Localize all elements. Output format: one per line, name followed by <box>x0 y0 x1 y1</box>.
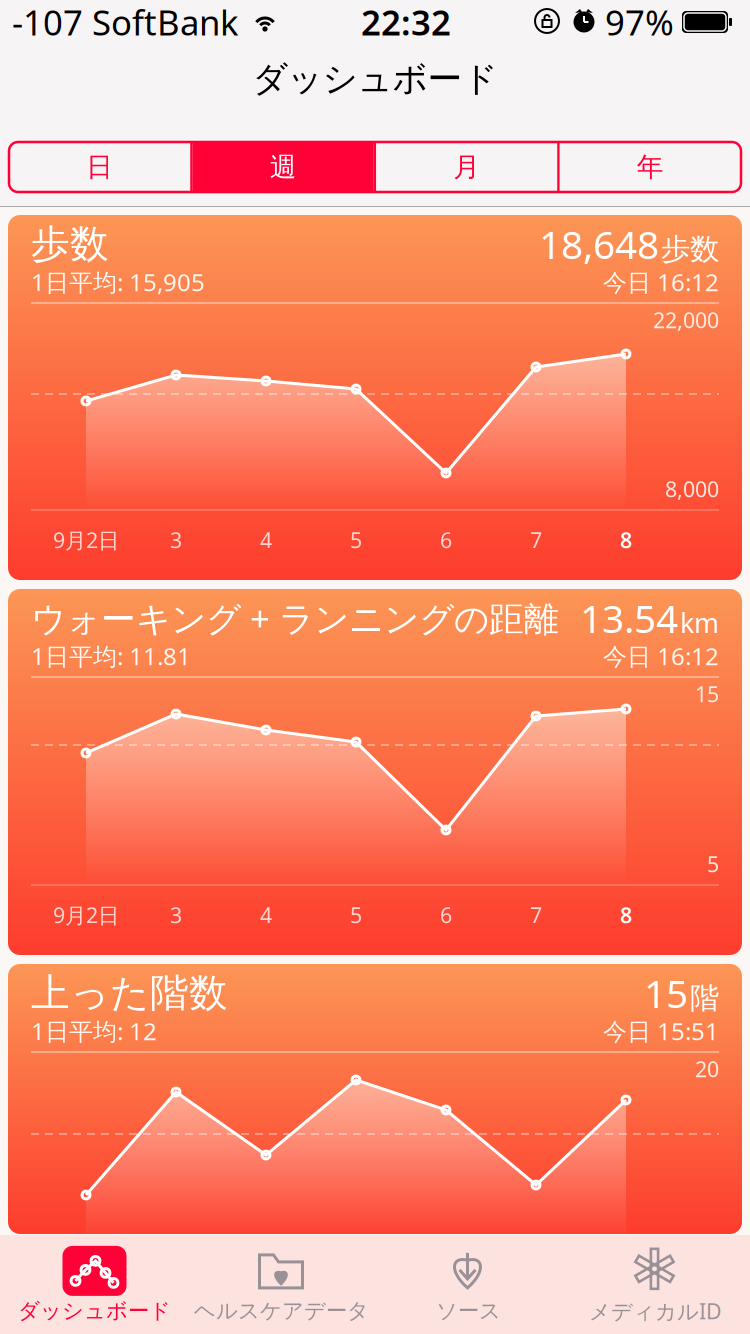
staticText: 15 <box>695 680 719 708</box>
staticText: 4 <box>260 901 272 929</box>
staticText: 5 <box>707 850 719 878</box>
staticText: 1日平均: 12 <box>31 1015 157 1047</box>
staticText: 8 <box>620 526 632 554</box>
staticText: 上った階数 <box>31 969 228 1017</box>
staticText: 5 <box>350 526 362 554</box>
staticText: 今日 15:51 <box>603 1015 719 1047</box>
staticText: 月 <box>453 151 480 183</box>
staticText: 15 <box>644 967 688 1019</box>
staticText: メディカルID <box>589 1297 722 1325</box>
staticText: 9月2日 <box>53 526 119 554</box>
button[interactable]: ソース <box>375 1235 562 1334</box>
staticText: 8 <box>620 901 632 929</box>
staticText: 6 <box>440 526 452 554</box>
staticText: 日 <box>86 151 113 183</box>
staticText: 6 <box>440 901 452 929</box>
staticText: 9月2日 <box>53 901 119 929</box>
staticText: 13.54 <box>580 592 678 644</box>
staticText: ダッシュボード <box>18 1298 171 1324</box>
button[interactable]: 月 <box>376 142 557 192</box>
staticText: ウォーキング + ランニングの距離 <box>31 595 559 641</box>
staticText: 1日平均: 15,905 <box>31 266 205 298</box>
staticText: 22,000 <box>653 306 719 334</box>
button[interactable]: メディカルID <box>562 1235 749 1334</box>
staticText: ダッシュボード <box>252 58 497 100</box>
staticText: 7 <box>530 901 542 929</box>
staticText: 18,648 <box>539 218 659 270</box>
staticText: ヘルスケアデータ <box>194 1298 369 1324</box>
button[interactable]: ダッシュボード <box>1 1235 188 1334</box>
staticText: 年 <box>637 151 664 183</box>
staticText: 7 <box>530 526 542 554</box>
staticText: 1日平均: 11.81 <box>31 640 191 672</box>
staticText: 今日 16:12 <box>603 266 719 298</box>
staticText: 5 <box>350 901 362 929</box>
staticText: -107 SoftBank <box>12 0 239 45</box>
staticText: 階 <box>690 980 719 1016</box>
button[interactable]: ヘルスケアデータ <box>188 1235 375 1334</box>
staticText: 3 <box>170 526 182 554</box>
button[interactable]: 日 <box>9 142 190 192</box>
staticText: 97% <box>605 0 674 45</box>
button[interactable]: 年 <box>560 142 741 192</box>
staticText: 8,000 <box>665 475 719 503</box>
staticText: 3 <box>170 901 182 929</box>
staticText: 歩数 <box>31 220 109 268</box>
staticText: 22:32 <box>361 0 451 45</box>
staticText: 4 <box>260 526 272 554</box>
staticText: 歩数 <box>661 231 719 267</box>
staticText: km <box>680 605 719 640</box>
staticText: 20 <box>695 1055 719 1083</box>
staticText: ソース <box>436 1298 501 1324</box>
staticText: 週 <box>270 151 297 183</box>
button[interactable]: 週 <box>193 142 374 192</box>
staticText: 今日 16:12 <box>603 640 719 672</box>
